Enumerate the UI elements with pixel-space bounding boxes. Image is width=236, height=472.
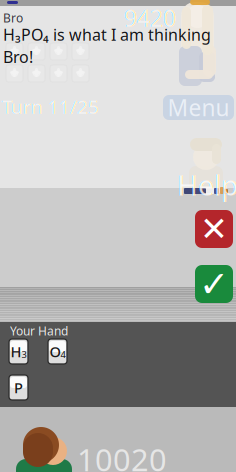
- staticText: P: [14, 378, 23, 397]
- staticText: 3: [21, 348, 26, 361]
- staticText: Bro: [3, 10, 23, 26]
- staticText: 10020: [77, 439, 167, 472]
- staticText: 9420: [124, 3, 176, 33]
- staticText: Your Hand: [10, 323, 68, 339]
- button[interactable]: Menu: [163, 95, 234, 120]
- staticText: ✕: [200, 210, 228, 248]
- button[interactable]: Reject: [195, 210, 233, 248]
- staticText: H: [10, 342, 21, 361]
- staticText: Turn 11/25: [2, 94, 99, 119]
- staticText: Menu: [167, 92, 229, 122]
- staticText: H₃PO₄ is what I am thinking: [3, 24, 211, 45]
- staticText: Bro!: [3, 46, 33, 67]
- staticText: 4: [60, 348, 65, 361]
- button[interactable]: Accept: [195, 265, 233, 303]
- button[interactable]: O: [48, 339, 67, 364]
- staticText: Help: [177, 166, 236, 203]
- staticText: O: [49, 342, 60, 361]
- staticText: ✓: [199, 264, 229, 304]
- button[interactable]: P: [9, 375, 28, 400]
- button[interactable]: H: [9, 339, 28, 364]
